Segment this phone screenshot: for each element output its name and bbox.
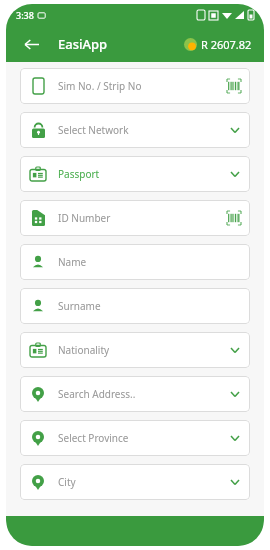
button[interactable]: Nationality xyxy=(20,332,250,368)
button[interactable]: Passport xyxy=(20,156,250,192)
button[interactable]: Navigation bar xyxy=(6,516,264,546)
staticText: Sim No. / Strip No xyxy=(58,79,142,93)
staticText: 3:38 xyxy=(16,9,34,21)
staticText: Nationality xyxy=(58,343,110,357)
button[interactable]: ID Number xyxy=(20,200,250,236)
button[interactable]: Back xyxy=(18,31,44,57)
button[interactable]: R 2607.82 xyxy=(184,37,252,52)
button[interactable]: Sim No. / Strip No xyxy=(20,68,250,104)
staticText: Name xyxy=(58,255,87,269)
staticText: Search Address.. xyxy=(58,387,136,401)
staticText: City xyxy=(58,475,76,489)
staticText: Surname xyxy=(58,299,101,313)
staticText: Select Province xyxy=(58,431,129,445)
button[interactable]: Name xyxy=(20,244,250,280)
staticText: EasiApp xyxy=(58,35,108,53)
staticText: Select Network xyxy=(58,123,129,137)
staticText: R 2607.82 xyxy=(201,37,252,52)
staticText: Passport xyxy=(58,167,100,181)
button[interactable]: Surname xyxy=(20,288,250,324)
button[interactable]: Select Province xyxy=(20,420,250,456)
staticText: ID Number xyxy=(58,211,111,225)
button[interactable]: Search Address.. xyxy=(20,376,250,412)
button[interactable]: Select Network xyxy=(20,112,250,148)
button[interactable]: City xyxy=(20,464,250,500)
